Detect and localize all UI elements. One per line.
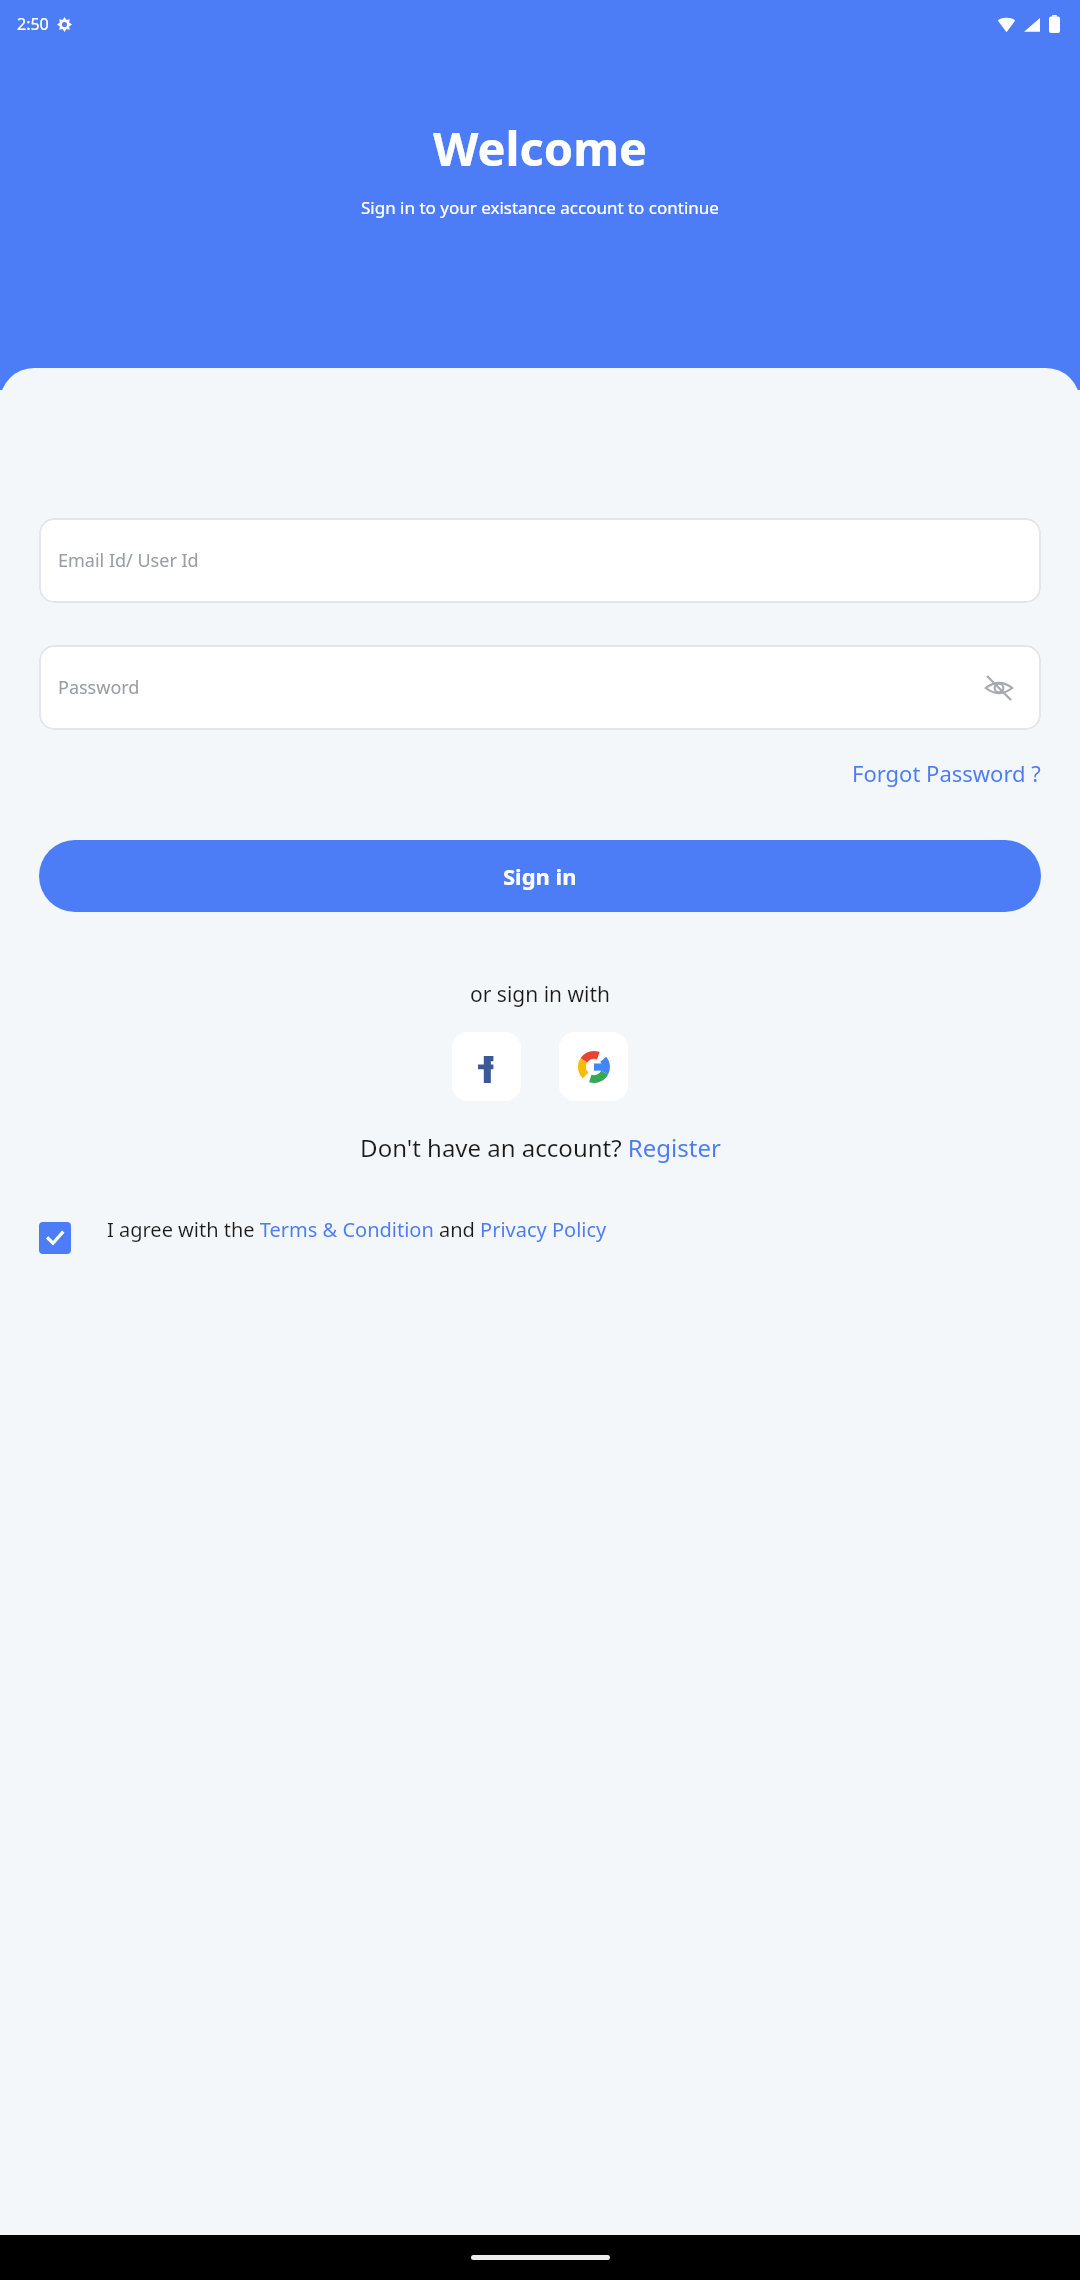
button[interactable]: Sign in with Facebook [452,1032,521,1101]
staticText: Sign in [503,861,577,891]
button[interactable]: Show password [977,666,1021,710]
staticText: Password [58,675,140,700]
staticText: Email Id/ User Id [58,548,199,573]
button[interactable]: Password [39,645,1041,730]
button[interactable]: Email Id/ User Id [39,518,1041,603]
staticText: 2:50 [17,13,49,35]
button[interactable]: I agree with the Terms & Condition and P… [107,1216,607,1243]
staticText: Sign in to your existance account to con… [361,196,719,219]
staticText: I agree with the Terms & Condition and P… [107,1216,607,1243]
staticText: Forgot Password ? [852,758,1041,788]
staticText: Don't have an account? Register [360,1131,721,1164]
button[interactable]: Forgot Password ? [852,754,1041,792]
staticText: Welcome [433,116,648,180]
staticText: or sign in with [470,980,611,1009]
button[interactable]: Sign in with Google [559,1032,628,1101]
button[interactable]: Agree to terms [39,1222,71,1254]
button[interactable]: Sign in [39,840,1041,912]
button[interactable]: Don't have an account? Register [0,1131,1080,1164]
